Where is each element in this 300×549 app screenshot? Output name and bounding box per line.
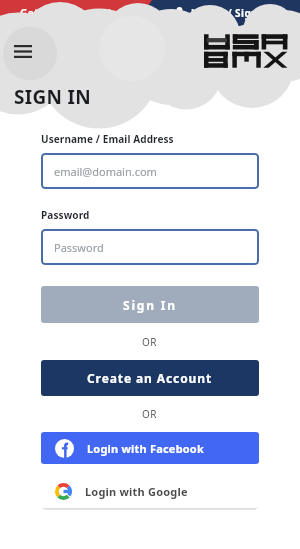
button[interactable]: Create an Account	[41, 360, 259, 396]
staticText: email@domain.com	[54, 164, 157, 179]
button[interactable]: Sign In	[41, 286, 259, 323]
staticText: Login with Google	[85, 484, 188, 499]
staticText: Password	[41, 208, 90, 222]
staticText: SIGN IN	[14, 84, 91, 110]
staticText: OR	[142, 335, 158, 349]
staticText: Get a Membership	[20, 6, 118, 20]
staticText: Log In / Sign Up	[191, 6, 276, 20]
button[interactable]: Open navigation menu	[10, 38, 36, 64]
staticText: Sign In	[123, 297, 177, 313]
button[interactable]: email@domain.com	[41, 153, 259, 189]
staticText: Password	[54, 240, 104, 255]
staticText: Login with Facebook	[87, 441, 204, 456]
staticText: OR	[142, 407, 158, 421]
button[interactable]: USA BMX home	[204, 32, 290, 70]
button[interactable]: Log In / Sign Up	[150, 0, 300, 26]
staticText: Create an Account	[87, 370, 213, 386]
button[interactable]: Login with Google	[41, 475, 259, 508]
button[interactable]: Password	[41, 229, 259, 265]
button[interactable]: Get a Membership	[0, 0, 150, 26]
button[interactable]: Login with Facebook	[41, 432, 259, 464]
staticText: Username / Email Address	[41, 132, 174, 146]
